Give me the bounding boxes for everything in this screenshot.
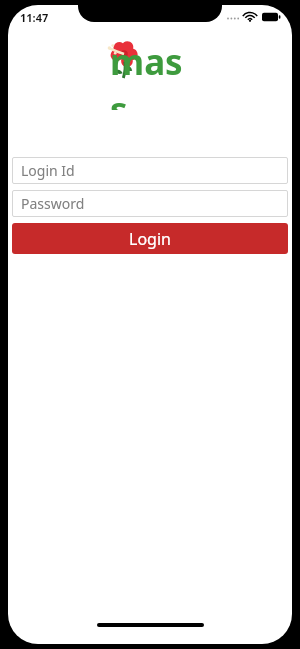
staticText: Password (21, 194, 85, 213)
staticText: mass (110, 38, 200, 110)
staticText: Login Id (21, 161, 75, 180)
button[interactable]: Login (12, 223, 288, 254)
staticText: Login (129, 228, 171, 250)
staticText: 11:47 (20, 10, 49, 25)
button[interactable]: Password (12, 190, 288, 217)
button[interactable]: Login Id (12, 157, 288, 184)
